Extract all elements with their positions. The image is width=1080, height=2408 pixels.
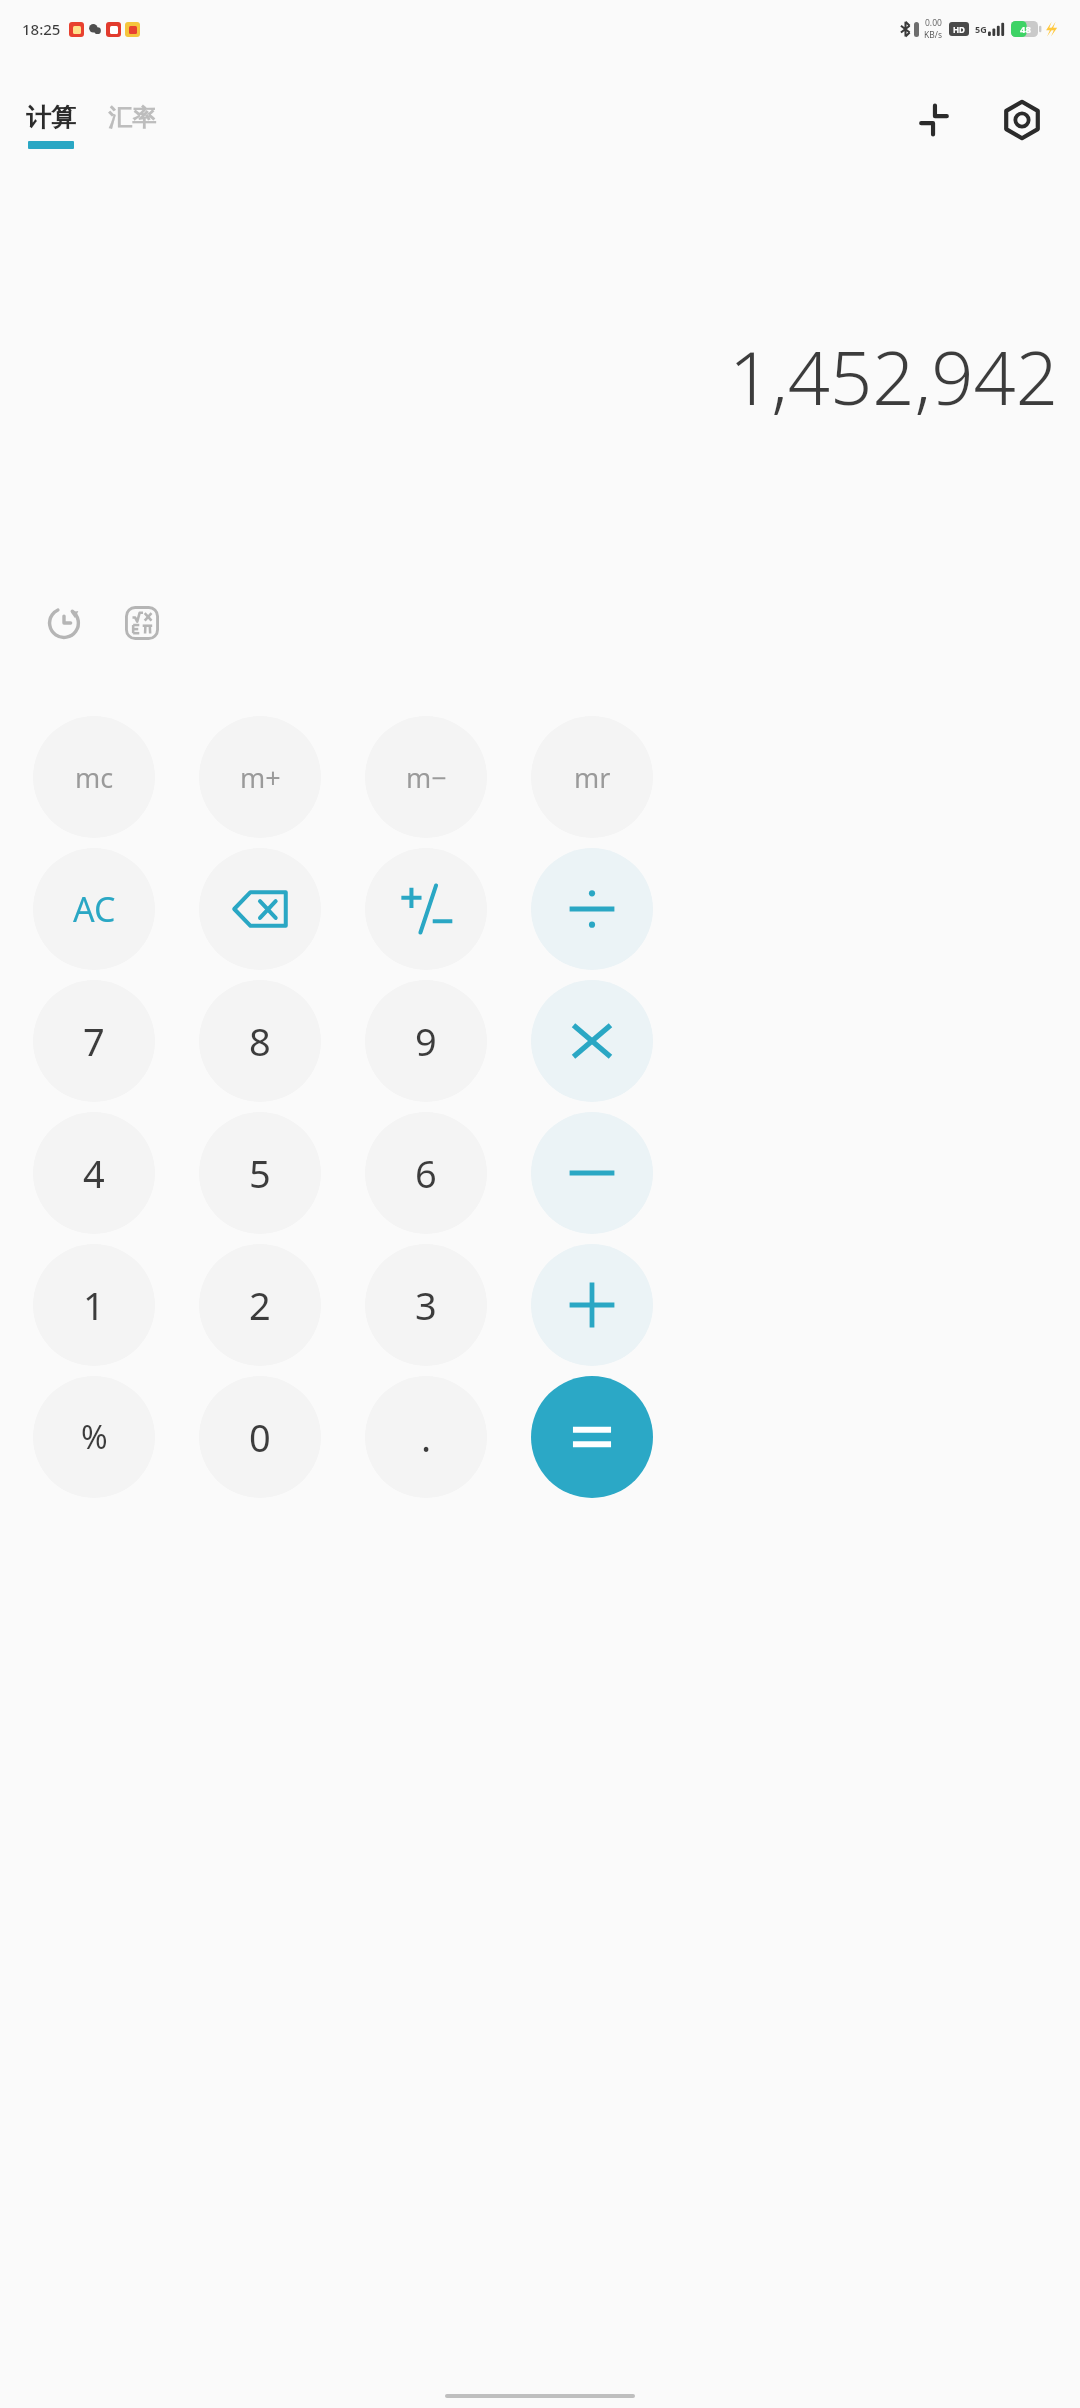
staticText: 8 <box>249 1015 271 1067</box>
button[interactable]: 3 <box>365 1244 487 1366</box>
staticText: 4 <box>83 1147 105 1199</box>
button[interactable]: 7 <box>33 980 155 1102</box>
button[interactable]: 8 <box>199 980 321 1102</box>
staticText: KB/s <box>924 29 943 41</box>
staticText: m+ <box>240 759 281 796</box>
button[interactable]: % <box>33 1376 155 1498</box>
button[interactable]: History <box>36 595 92 651</box>
button[interactable]: 2 <box>199 1244 321 1366</box>
staticText: 6 <box>415 1147 437 1199</box>
button[interactable]: 6 <box>365 1112 487 1234</box>
staticText: 0.00 <box>925 17 942 29</box>
button[interactable]: 5 <box>199 1112 321 1234</box>
staticText: AC <box>73 886 116 932</box>
button[interactable]: 1 <box>33 1244 155 1366</box>
staticText: 2 <box>249 1279 271 1331</box>
staticText: . <box>421 1411 432 1463</box>
staticText: 1 <box>83 1279 105 1331</box>
button[interactable]: Equals <box>531 1376 653 1498</box>
staticText: 3 <box>415 1279 437 1331</box>
button[interactable]: Subtract <box>531 1112 653 1234</box>
staticText: 7 <box>83 1015 105 1067</box>
button[interactable]: Settings <box>996 94 1048 146</box>
button[interactable]: mc <box>33 716 155 838</box>
button[interactable]: Divide <box>531 848 653 970</box>
button[interactable]: 汇率 <box>106 111 158 141</box>
staticText: 18:25 <box>22 19 61 39</box>
button[interactable]: Scientific <box>114 595 170 651</box>
staticText: 1,452,942 <box>728 326 1058 427</box>
button[interactable]: m− <box>365 716 487 838</box>
button[interactable]: 0 <box>199 1376 321 1498</box>
staticText: 5 <box>249 1147 271 1199</box>
staticText: m− <box>406 759 447 796</box>
staticText: 48 <box>1020 23 1031 36</box>
staticText: mc <box>75 759 114 796</box>
staticText: 计算 <box>26 102 76 133</box>
button[interactable]: 4 <box>33 1112 155 1234</box>
staticText: 9 <box>415 1015 437 1067</box>
button[interactable]: 9 <box>365 980 487 1102</box>
button[interactable]: 计算 <box>24 102 78 149</box>
staticText: HD <box>953 24 965 35</box>
staticText: 汇率 <box>108 103 156 133</box>
button[interactable]: Plus minus <box>365 848 487 970</box>
button[interactable]: m+ <box>199 716 321 838</box>
staticText: 5G <box>975 23 987 35</box>
button[interactable]: Collapse <box>908 94 960 146</box>
staticText: % <box>81 1415 108 1459</box>
button[interactable]: Multiply <box>531 980 653 1102</box>
button[interactable]: . <box>365 1376 487 1498</box>
button[interactable]: Add <box>531 1244 653 1366</box>
button[interactable]: Backspace <box>199 848 321 970</box>
staticText: mr <box>574 759 611 796</box>
button[interactable]: mr <box>531 716 653 838</box>
staticText: 0 <box>249 1411 271 1463</box>
button[interactable]: AC <box>33 848 155 970</box>
